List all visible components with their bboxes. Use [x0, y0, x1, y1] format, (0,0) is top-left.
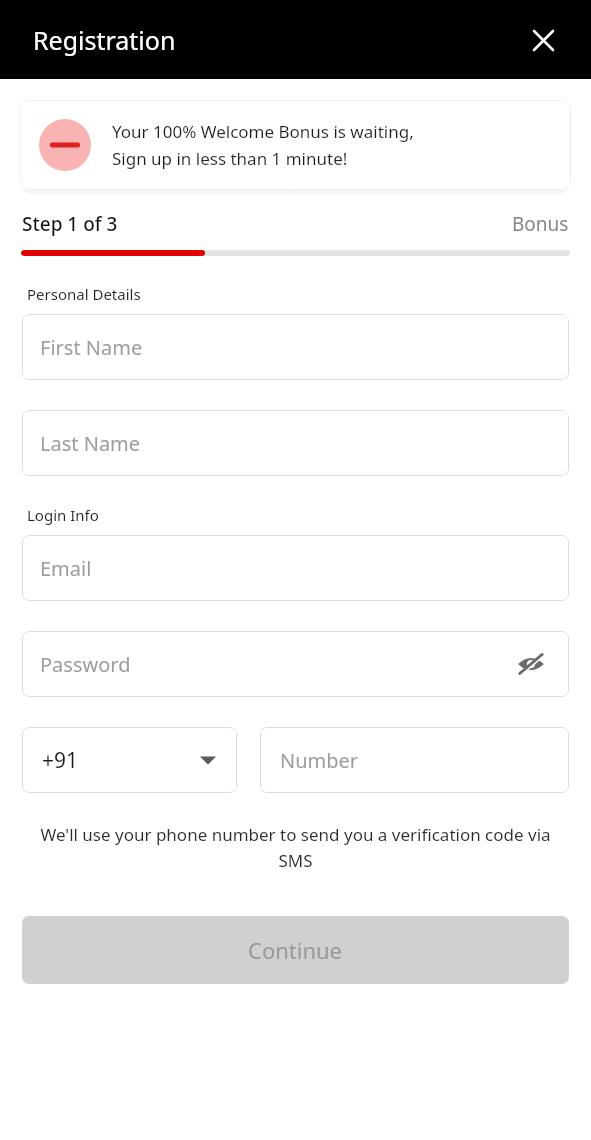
staticText: Sign up in less than 1 minute!: [112, 147, 348, 170]
button[interactable]: Email: [22, 535, 569, 601]
staticText: Password: [40, 651, 131, 678]
staticText: Your 100% Welcome Bonus is waiting,: [112, 120, 414, 143]
button[interactable]: Toggle password visibility: [509, 642, 553, 686]
staticText: +91: [42, 746, 79, 775]
staticText: Last Name: [40, 430, 141, 457]
button[interactable]: First Name: [22, 314, 569, 380]
button[interactable]: Password: [22, 631, 569, 697]
staticText: Personal Details: [27, 284, 141, 304]
staticText: Step 1 of 3: [22, 211, 118, 237]
staticText: We'll use your phone number to send you …: [30, 823, 561, 872]
button[interactable]: Continue: [22, 916, 569, 984]
button[interactable]: Last Name: [22, 410, 569, 476]
button[interactable]: Your 100% Welcome Bonus is waiting,: [20, 100, 571, 190]
button[interactable]: +91: [22, 727, 237, 793]
staticText: Continue: [248, 935, 343, 965]
button[interactable]: Number: [260, 727, 569, 793]
staticText: First Name: [40, 334, 143, 361]
staticText: Bonus: [512, 211, 569, 237]
staticText: Number: [280, 747, 359, 774]
staticText: Email: [40, 555, 92, 582]
staticText: Login Info: [27, 505, 99, 525]
button[interactable]: Close: [521, 18, 565, 62]
staticText: Registration: [33, 23, 176, 57]
